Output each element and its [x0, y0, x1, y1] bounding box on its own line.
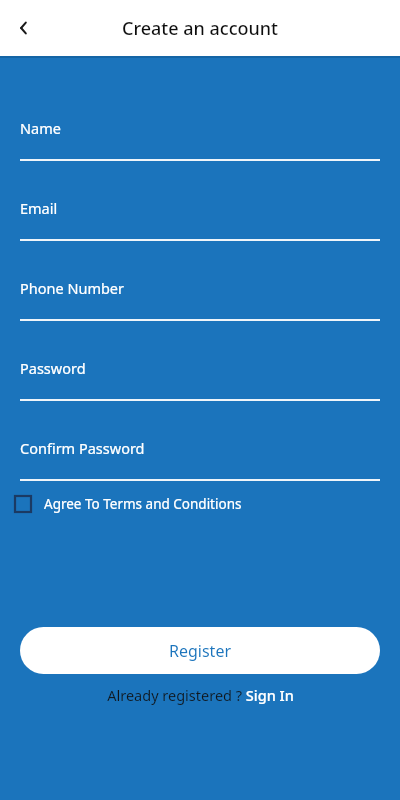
staticText: Password: [20, 358, 86, 378]
staticText: Already registered ? Sign In: [107, 685, 294, 705]
staticText: Register: [169, 640, 232, 662]
staticText: Email: [20, 198, 58, 218]
staticText: Phone Number: [20, 278, 125, 298]
button[interactable]: Email: [0, 183, 400, 241]
button[interactable]: Register: [20, 627, 380, 674]
button[interactable]: Confirm Password: [0, 423, 400, 481]
button[interactable]: Agree To Terms and Conditions: [0, 490, 400, 518]
button[interactable]: Password: [0, 343, 400, 401]
button[interactable]: Already registered ? Sign In: [0, 683, 400, 707]
button[interactable]: Name: [0, 103, 400, 161]
button[interactable]: Back: [8, 12, 40, 44]
button[interactable]: Phone Number: [0, 263, 400, 321]
staticText: Name: [20, 118, 61, 138]
staticText: Agree To Terms and Conditions: [44, 495, 242, 513]
staticText: Confirm Password: [20, 438, 145, 458]
staticText: Create an account: [122, 16, 278, 41]
